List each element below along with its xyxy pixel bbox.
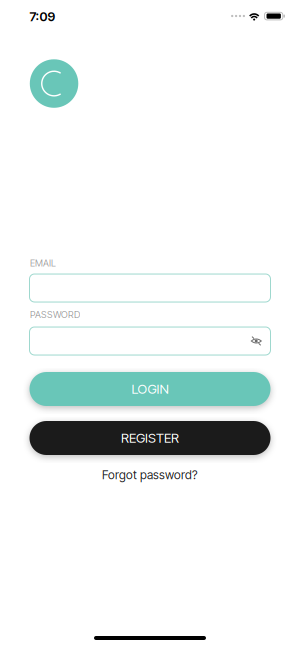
button[interactable]: Forgot password? — [29, 466, 270, 484]
staticText: 7:09 — [29, 9, 55, 24]
button[interactable]: LOGIN — [29, 372, 270, 406]
staticText: LOGIN — [131, 381, 168, 397]
staticText: REGISTER — [121, 430, 179, 446]
staticText: EMAIL — [30, 257, 56, 269]
button[interactable]: Show password — [243, 328, 269, 354]
button[interactable]: REGISTER — [29, 421, 270, 455]
staticText: Forgot password? — [102, 468, 198, 482]
staticText: PASSWORD — [30, 309, 80, 320]
